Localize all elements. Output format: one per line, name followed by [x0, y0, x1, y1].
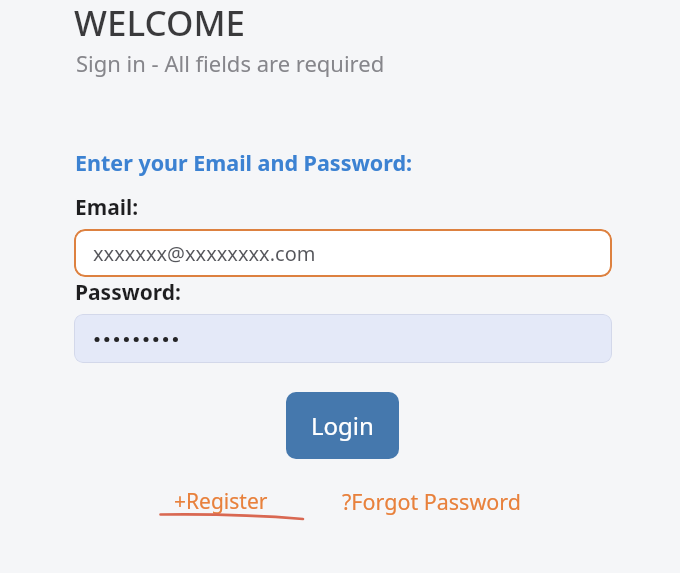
staticText: WELCOME: [74, 0, 246, 47]
staticText: Enter your Email and Password:: [75, 148, 413, 177]
staticText: +Register: [174, 487, 268, 516]
button[interactable]: ?Forgot Password: [335, 482, 528, 521]
staticText: Password:: [75, 278, 181, 307]
staticText: Sign in - All fields are required: [76, 48, 385, 78]
staticText: ?Forgot Password: [342, 487, 521, 516]
button[interactable]: +Register: [167, 482, 275, 521]
staticText: xxxxxxx@xxxxxxxx.com: [93, 240, 316, 267]
staticText: Email:: [75, 193, 139, 222]
button[interactable]: [74, 314, 612, 363]
staticText: Login: [311, 409, 374, 442]
button[interactable]: Login: [286, 392, 399, 459]
button[interactable]: xxxxxxx@xxxxxxxx.com: [74, 229, 612, 277]
